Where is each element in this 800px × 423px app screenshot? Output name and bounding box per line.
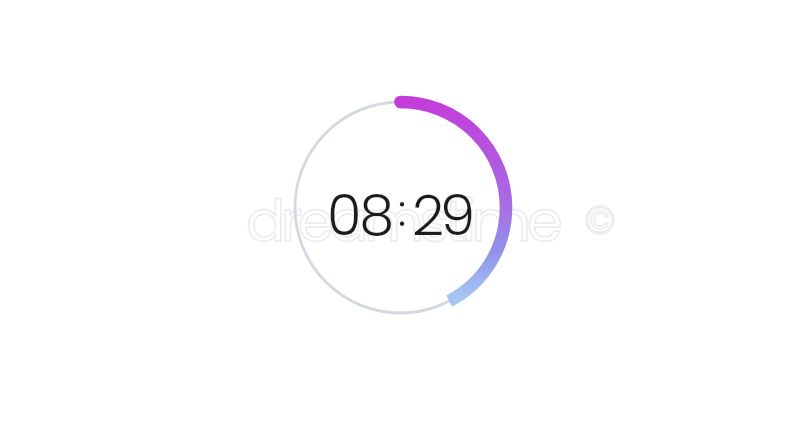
staticText: dreamstime <box>246 180 559 261</box>
staticText: © <box>584 192 616 248</box>
staticText: 08 <box>327 176 393 254</box>
staticText: 29 <box>412 176 472 254</box>
staticText: : <box>398 180 407 242</box>
button[interactable]: 08 <box>280 87 521 328</box>
